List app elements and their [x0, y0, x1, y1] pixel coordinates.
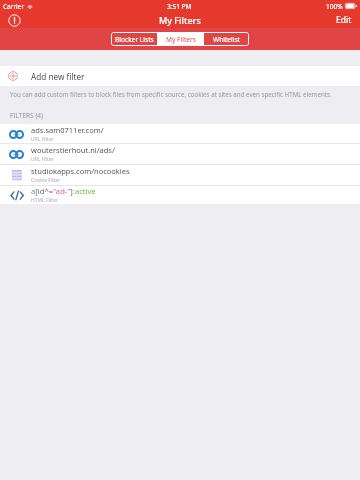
- staticText: a[id^="ad-"]:active: [31, 186, 96, 196]
- button[interactable]: ads.sam0711er.com/: [0, 124, 360, 143]
- staticText: Whitelist: [213, 35, 240, 44]
- staticText: My Filters: [166, 35, 196, 44]
- staticText: Edit: [336, 14, 352, 26]
- button[interactable]: Blocker Lists: [111, 32, 157, 46]
- staticText: ads.sam0711er.com/: [31, 125, 104, 135]
- staticText: You can add custom filters to block file…: [10, 90, 332, 98]
- staticText: wouterstierhout.nl/ads/: [31, 145, 115, 155]
- staticText: My Filters: [159, 14, 201, 26]
- button[interactable]: My Filters: [158, 32, 203, 46]
- staticText: FILTERS (4): [10, 111, 44, 120]
- staticText: Add new filter: [31, 71, 85, 82]
- staticText: Carrier: [3, 2, 25, 11]
- button[interactable]: Whitelist: [204, 32, 249, 46]
- button[interactable]: Information: [6, 12, 22, 28]
- staticText: URL Filter: [31, 156, 54, 163]
- button[interactable]: wouterstierhout.nl/ads/: [0, 144, 360, 164]
- staticText: Blocker Lists: [115, 35, 154, 44]
- staticText: studiokapps.com/nocookies: [31, 166, 130, 176]
- button[interactable]: Add new filter: [0, 66, 360, 86]
- staticText: 3:51 PM: [167, 2, 192, 11]
- staticText: Cookie Filter: [31, 177, 61, 184]
- staticText: HTML Filter: [31, 197, 58, 204]
- staticText: 100%: [326, 2, 343, 11]
- button[interactable]: a[id^="ad-"]:active: [0, 186, 360, 204]
- button[interactable]: Edit: [328, 12, 360, 28]
- button[interactable]: studiokapps.com/nocookies: [0, 165, 360, 185]
- staticText: URL Filter: [31, 136, 54, 143]
